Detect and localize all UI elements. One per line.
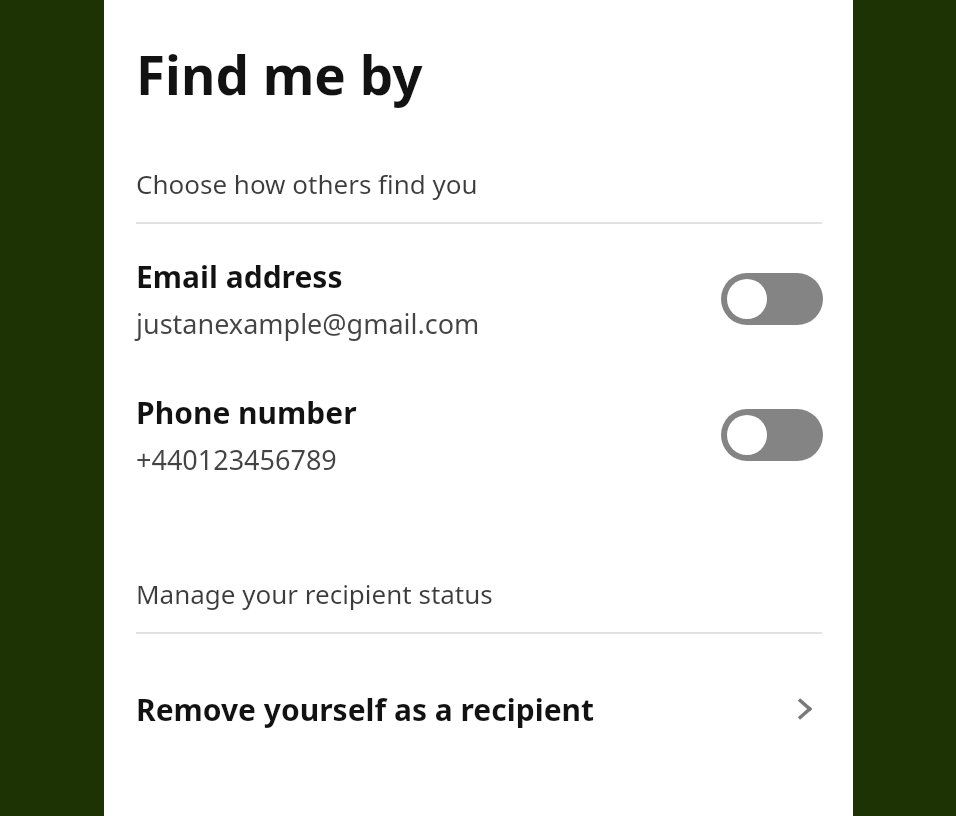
staticText: Remove yourself as a recipient [136,689,781,730]
staticText: Email address [136,256,343,297]
button[interactable]: Toggle off [721,409,823,461]
staticText: +440123456789 [136,441,337,478]
button[interactable]: Open [781,685,829,733]
button[interactable]: Email address [104,256,853,342]
staticText: justanexample@gmail.com [136,305,480,342]
staticText: Choose how others find you [136,166,478,201]
button[interactable]: Phone number [104,392,853,478]
staticText: Phone number [136,392,357,433]
staticText: Find me by [136,38,423,110]
staticText: Manage your recipient status [136,576,493,611]
button[interactable]: Remove yourself as a recipient [104,634,853,784]
button[interactable]: Toggle off [721,273,823,325]
